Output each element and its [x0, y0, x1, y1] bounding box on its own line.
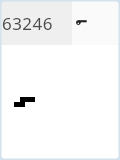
button[interactable]: 63246 [0, 0, 72, 45]
staticText: 63246 [2, 12, 53, 35]
button[interactable]: Key [74, 16, 90, 32]
